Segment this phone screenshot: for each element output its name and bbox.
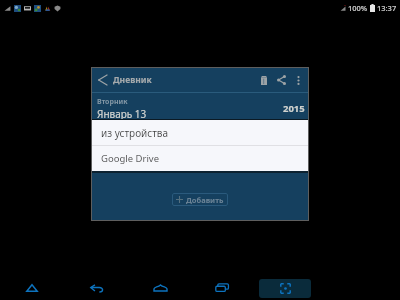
staticText: 2015 [283, 102, 305, 115]
staticText: Google Drive [101, 152, 160, 165]
staticText: 13:37 [377, 3, 397, 13]
staticText: Добавить [186, 195, 224, 205]
button[interactable]: Screenshot [259, 279, 311, 298]
button[interactable]: Share [272, 68, 290, 92]
button[interactable]: Back [76, 277, 116, 298]
button[interactable]: Home [140, 277, 180, 298]
staticText: из устройства [101, 126, 169, 140]
staticText: Январь 13 [97, 107, 147, 121]
button[interactable]: из устройства [92, 120, 308, 145]
button[interactable]: Добавить [172, 193, 228, 206]
button[interactable]: Delete [255, 68, 272, 92]
button[interactable]: More options [290, 68, 306, 92]
staticText: Дневник [113, 74, 152, 86]
staticText: 100% [348, 3, 368, 13]
button[interactable]: Back [92, 68, 112, 92]
button[interactable]: Recents [202, 277, 242, 298]
button[interactable]: Google Drive [92, 146, 308, 171]
staticText: Вторник [97, 97, 128, 107]
button[interactable]: Menu [12, 277, 52, 298]
